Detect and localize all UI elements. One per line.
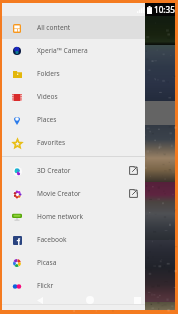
staticText: Folders	[37, 69, 60, 78]
staticText: 3D Creator	[37, 166, 71, 175]
staticText: Home network	[37, 212, 84, 221]
staticText: Facebook	[37, 235, 67, 244]
staticText: Picasa	[37, 258, 57, 267]
staticText: Videos	[37, 92, 58, 101]
button[interactable]: Back	[34, 294, 46, 306]
button[interactable]: 3D Creator	[2, 159, 145, 182]
button[interactable]: Home network	[2, 205, 145, 228]
button[interactable]: Picasa	[2, 251, 145, 274]
button[interactable]: Movie Creator	[2, 182, 145, 205]
button[interactable]: All content	[2, 16, 145, 39]
button[interactable]: Recents	[131, 294, 143, 306]
staticText: All content	[37, 23, 71, 32]
button[interactable]: Xperia™ Camera	[2, 39, 145, 62]
staticText: Favorites	[37, 138, 66, 147]
staticText: Flickr	[37, 281, 54, 290]
button[interactable]: Home	[84, 294, 96, 306]
button[interactable]: Videos	[2, 85, 145, 108]
button[interactable]: Favorites	[2, 131, 145, 154]
staticText: Places	[37, 115, 57, 124]
button[interactable]: Facebook	[2, 228, 145, 251]
button[interactable]: Folders	[2, 62, 145, 85]
button[interactable]: Places	[2, 108, 145, 131]
staticText: Xperia™ Camera	[37, 46, 88, 55]
button[interactable]: Flickr	[2, 274, 145, 297]
staticText: 10:35	[154, 4, 175, 15]
staticText: Movie Creator	[37, 189, 81, 198]
